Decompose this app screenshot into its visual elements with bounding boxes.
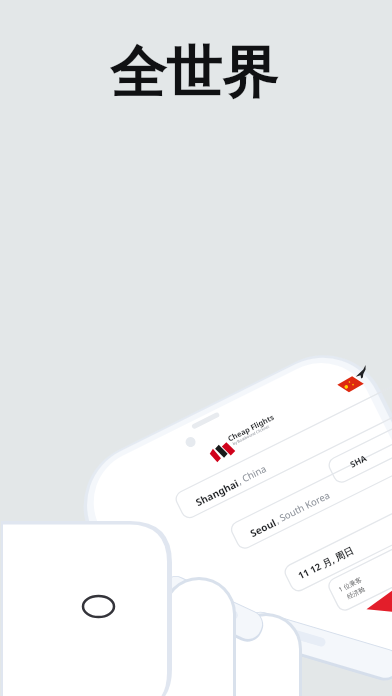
staticText: 1 位乘客 [337,575,363,594]
staticText: SHA [348,452,369,471]
staticText: Seoul [248,515,279,540]
staticText: by Boatbound Clicknet [232,423,271,446]
staticText: 全世界 [110,38,278,109]
staticText: 11 12 月, 周日 [296,543,356,582]
staticText: 经济舱 [345,585,367,601]
button[interactable]: Seoul [248,488,333,540]
button[interactable]: Shanghai [193,462,269,509]
staticText: , South Korea [273,488,332,527]
staticText: , China [235,462,269,487]
staticText: Shanghai [193,476,241,509]
staticText: Cheap Flights [226,412,276,443]
